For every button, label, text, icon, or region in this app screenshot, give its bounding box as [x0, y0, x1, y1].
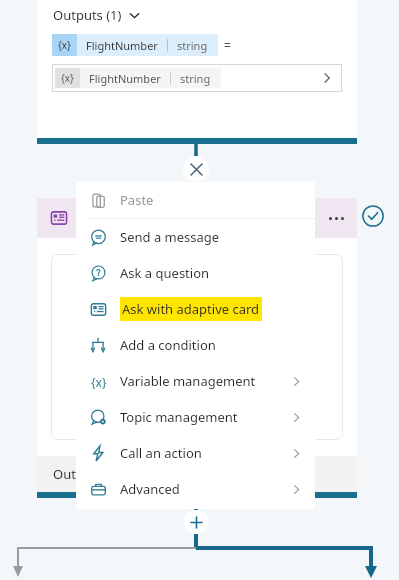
staticText: Paste [120, 191, 154, 209]
button[interactable]: Send a message [76, 219, 315, 255]
staticText: {x} [61, 71, 74, 85]
staticText: FlightNumber [89, 71, 161, 86]
staticText: Advanced [120, 480, 180, 498]
button[interactable]: {x} [76, 363, 315, 399]
staticText: string [180, 71, 211, 86]
staticText: FlightNumber [86, 38, 158, 53]
button[interactable]: Close [183, 156, 209, 182]
staticText: Ask with adaptive card [122, 300, 260, 318]
staticText: string [177, 38, 208, 53]
button[interactable]: More options [323, 205, 349, 231]
staticText: = [224, 37, 231, 53]
staticText: Topic management [120, 408, 238, 426]
staticText: {x} [58, 38, 71, 52]
staticText: Add a condition [120, 336, 216, 354]
staticText: {x} [91, 374, 107, 390]
button[interactable]: Validated [362, 205, 384, 227]
staticText: Outputs (1) [53, 6, 122, 24]
button[interactable]: Outputs (1) [53, 6, 140, 24]
button[interactable]: {x} [52, 64, 342, 92]
button[interactable]: Ask with adaptive card [76, 291, 315, 327]
button[interactable]: Advanced [76, 471, 315, 507]
staticText: Call an action [120, 444, 202, 462]
button[interactable]: Add a condition [76, 327, 315, 363]
button[interactable]: Paste [76, 182, 315, 218]
staticText: Ask a question [120, 264, 210, 282]
staticText: Send a message [120, 228, 220, 246]
button[interactable]: Call an action [76, 435, 315, 471]
staticText: Outputs [53, 465, 103, 483]
button[interactable]: Add node [184, 510, 208, 534]
button[interactable]: Ask a question [76, 255, 315, 291]
button[interactable]: Topic management [76, 399, 315, 435]
staticText: Variable management [120, 372, 256, 390]
